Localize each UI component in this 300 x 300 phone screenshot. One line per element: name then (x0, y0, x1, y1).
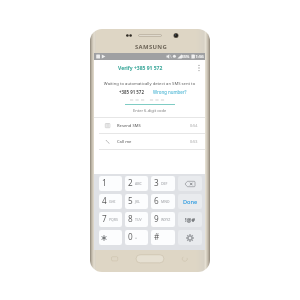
staticText: Call me (117, 139, 132, 145)
staticText: Wrong number? (153, 89, 187, 95)
staticText: 85% (181, 54, 190, 60)
button[interactable]: Keyboard settings (178, 230, 202, 245)
button[interactable]: 9 (151, 212, 175, 227)
staticText: 0:53 (190, 139, 198, 144)
staticText: DEF (161, 181, 168, 186)
staticText: !@# (185, 216, 196, 224)
button[interactable]: 7 (99, 212, 122, 227)
staticText: Verify +385 91 572 (118, 65, 163, 72)
staticText: Waiting to automatically detect an SMS s… (94, 81, 205, 87)
button[interactable]: 2 (125, 176, 148, 191)
button[interactable]: 3 (151, 176, 175, 191)
staticText: 7 (102, 213, 107, 224)
button[interactable]: !@# (178, 212, 202, 227)
staticText: GHI (109, 199, 116, 204)
staticText: 4 (102, 195, 107, 206)
staticText: 3 (154, 177, 159, 188)
staticText: PQRS (109, 217, 118, 222)
staticText: WXYZ (161, 217, 171, 222)
button[interactable]: 0 (125, 230, 148, 245)
button[interactable]: 6 (151, 194, 175, 209)
staticText: 11:56 (193, 54, 204, 60)
button[interactable]: Wrong number? (153, 89, 187, 95)
button[interactable]: Keyboard settings (99, 230, 122, 245)
staticText: 5 (128, 195, 133, 206)
staticText: 2 (128, 177, 133, 188)
staticText: Enter 6-digit code (133, 108, 167, 113)
staticText: TUV (135, 217, 142, 222)
button[interactable]: Done (178, 194, 202, 209)
staticText: Done (183, 198, 198, 206)
staticText: # (154, 231, 160, 242)
button[interactable]: More options (192, 60, 205, 76)
staticText: 0 (128, 231, 133, 242)
button[interactable]: 5 (125, 194, 148, 209)
staticText: 8 (128, 213, 133, 224)
button[interactable]: Resend SMS (94, 118, 205, 133)
staticText: 6 (154, 195, 159, 206)
staticText: SAMSUNG (135, 43, 168, 51)
button[interactable]: Backspace (178, 176, 202, 191)
button[interactable]: Call me (94, 134, 205, 149)
button[interactable]: 8 (125, 212, 148, 227)
staticText: JKL (135, 199, 140, 204)
staticText: 0:54 (190, 123, 198, 128)
button[interactable]: 1 (99, 176, 122, 191)
staticText: 1 (102, 177, 107, 188)
button[interactable]: 4 (99, 194, 122, 209)
staticText: MNO (161, 199, 170, 204)
staticText: 9 (154, 213, 159, 224)
staticText: +385 91 572 (119, 89, 144, 95)
staticText: + (135, 235, 138, 240)
button[interactable]: # (151, 230, 175, 245)
staticText: ABC (135, 181, 142, 186)
staticText: Resend SMS (117, 123, 141, 129)
